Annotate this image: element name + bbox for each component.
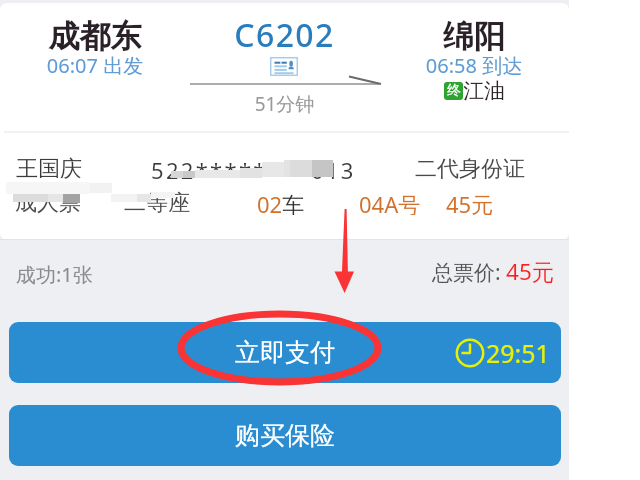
staticText: 二代身份证 (415, 155, 525, 181)
staticText: 购买保险 (235, 420, 335, 451)
staticText: 二等座 (124, 189, 190, 215)
staticText: C6202 (190, 13, 379, 57)
staticText: 29:51 (486, 336, 550, 370)
staticText: 02车 (257, 189, 305, 215)
staticText: 45元 (446, 189, 494, 215)
staticText: 立即支付 (235, 337, 335, 368)
staticText: 522********013 (151, 155, 356, 181)
staticText: 51分钟 (190, 91, 379, 117)
staticText: 成功:1张 (16, 261, 93, 288)
staticText: 江油 (463, 78, 505, 104)
staticText: 06:07 出发 (0, 52, 190, 79)
button[interactable]: 购买保险 (9, 405, 561, 466)
staticText: 成都东 (0, 17, 190, 56)
staticText: 06:58 到达 (379, 52, 569, 79)
button[interactable]: 立即支付 (9, 322, 561, 383)
staticText: 总票价: 45元 (432, 256, 555, 287)
staticText: 王国庆 (16, 155, 82, 181)
staticText: 绵阳 (379, 17, 569, 56)
staticText: 04A号 (359, 189, 421, 215)
staticText: 成人票 (15, 189, 81, 215)
staticText: 终 (447, 82, 461, 100)
